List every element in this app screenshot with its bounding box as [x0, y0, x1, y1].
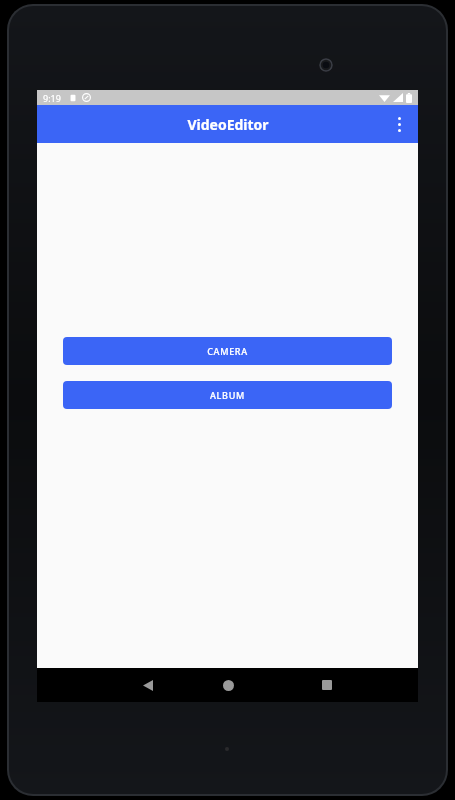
- staticText: VideoEditor: [187, 115, 269, 134]
- button[interactable]: Recent apps: [310, 668, 344, 702]
- button[interactable]: ALBUM: [63, 381, 392, 409]
- staticText: ALBUM: [210, 389, 245, 401]
- button[interactable]: CAMERA: [63, 337, 392, 365]
- staticText: 9:19: [43, 92, 61, 104]
- button[interactable]: Back: [131, 668, 165, 702]
- button[interactable]: More options: [380, 105, 418, 143]
- staticText: CAMERA: [207, 345, 248, 357]
- button[interactable]: Home: [211, 668, 245, 702]
